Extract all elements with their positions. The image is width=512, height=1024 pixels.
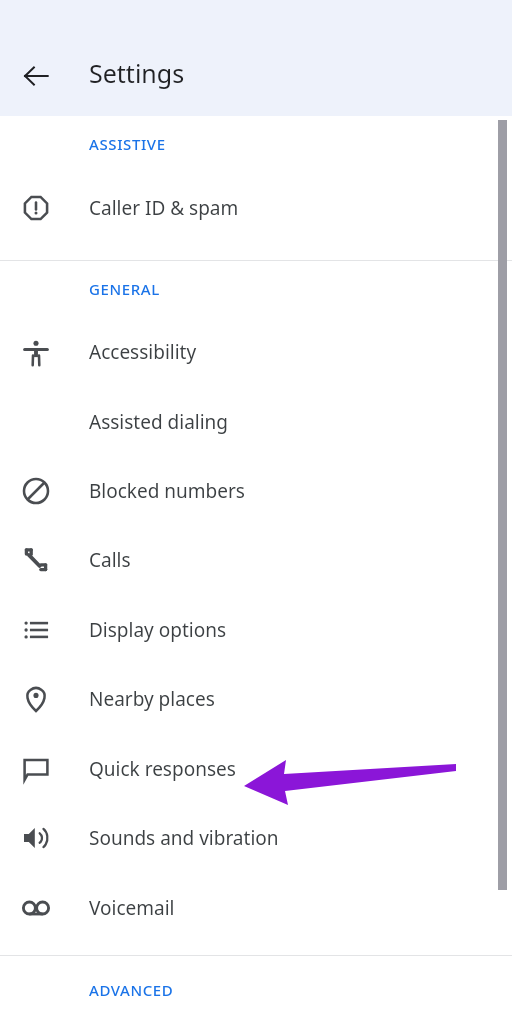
staticText: Accessibility bbox=[89, 339, 197, 365]
staticText: ADVANCED bbox=[89, 980, 174, 1000]
staticText: Settings bbox=[89, 56, 185, 90]
button[interactable]: Calls bbox=[0, 525, 512, 595]
button[interactable]: Assisted dialing bbox=[0, 387, 512, 456]
staticText: GENERAL bbox=[89, 279, 160, 299]
button[interactable]: Sounds and vibration bbox=[0, 803, 512, 873]
button[interactable]: Accessibility bbox=[0, 317, 512, 387]
button[interactable]: Quick responses bbox=[0, 734, 512, 803]
staticText: Quick responses bbox=[89, 756, 236, 782]
staticText: Caller ID & spam bbox=[89, 195, 239, 221]
button[interactable]: ADVANCED bbox=[0, 956, 512, 1024]
button[interactable]: Blocked numbers bbox=[0, 456, 512, 525]
button[interactable]: Caller ID & spam bbox=[0, 172, 512, 244]
staticText: Blocked numbers bbox=[89, 478, 245, 504]
button[interactable]: Nearby places bbox=[0, 664, 512, 734]
button[interactable]: Voicemail bbox=[0, 873, 512, 942]
staticText: Voicemail bbox=[89, 895, 175, 921]
button[interactable]: Back bbox=[14, 54, 58, 98]
staticText: Assisted dialing bbox=[89, 409, 229, 435]
staticText: Sounds and vibration bbox=[89, 825, 279, 851]
staticText: Calls bbox=[89, 547, 131, 573]
staticText: ASSISTIVE bbox=[89, 134, 166, 154]
staticText: Display options bbox=[89, 617, 227, 643]
staticText: Nearby places bbox=[89, 686, 215, 712]
button[interactable]: Display options bbox=[0, 595, 512, 664]
